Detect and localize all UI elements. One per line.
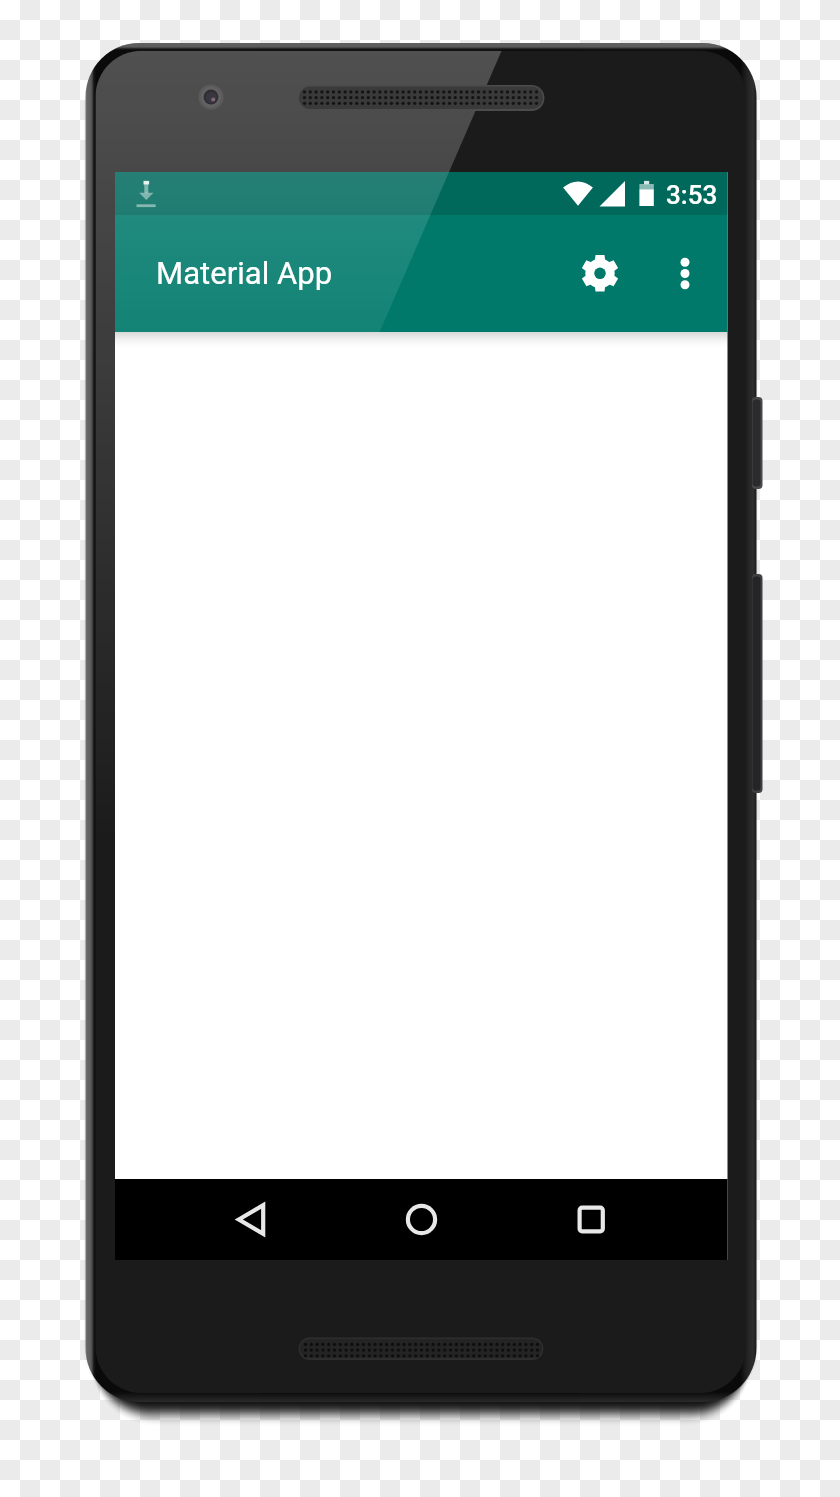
button[interactable]: Material App <box>115 215 545 332</box>
button[interactable]: Settings <box>576 249 624 297</box>
button[interactable]: Recent apps <box>567 1195 615 1243</box>
staticText: 3:53 <box>666 180 718 210</box>
button[interactable]: More options <box>661 249 709 297</box>
button[interactable]: Home <box>397 1195 445 1243</box>
staticText: Material App <box>156 255 333 291</box>
button[interactable]: Back <box>227 1195 275 1243</box>
